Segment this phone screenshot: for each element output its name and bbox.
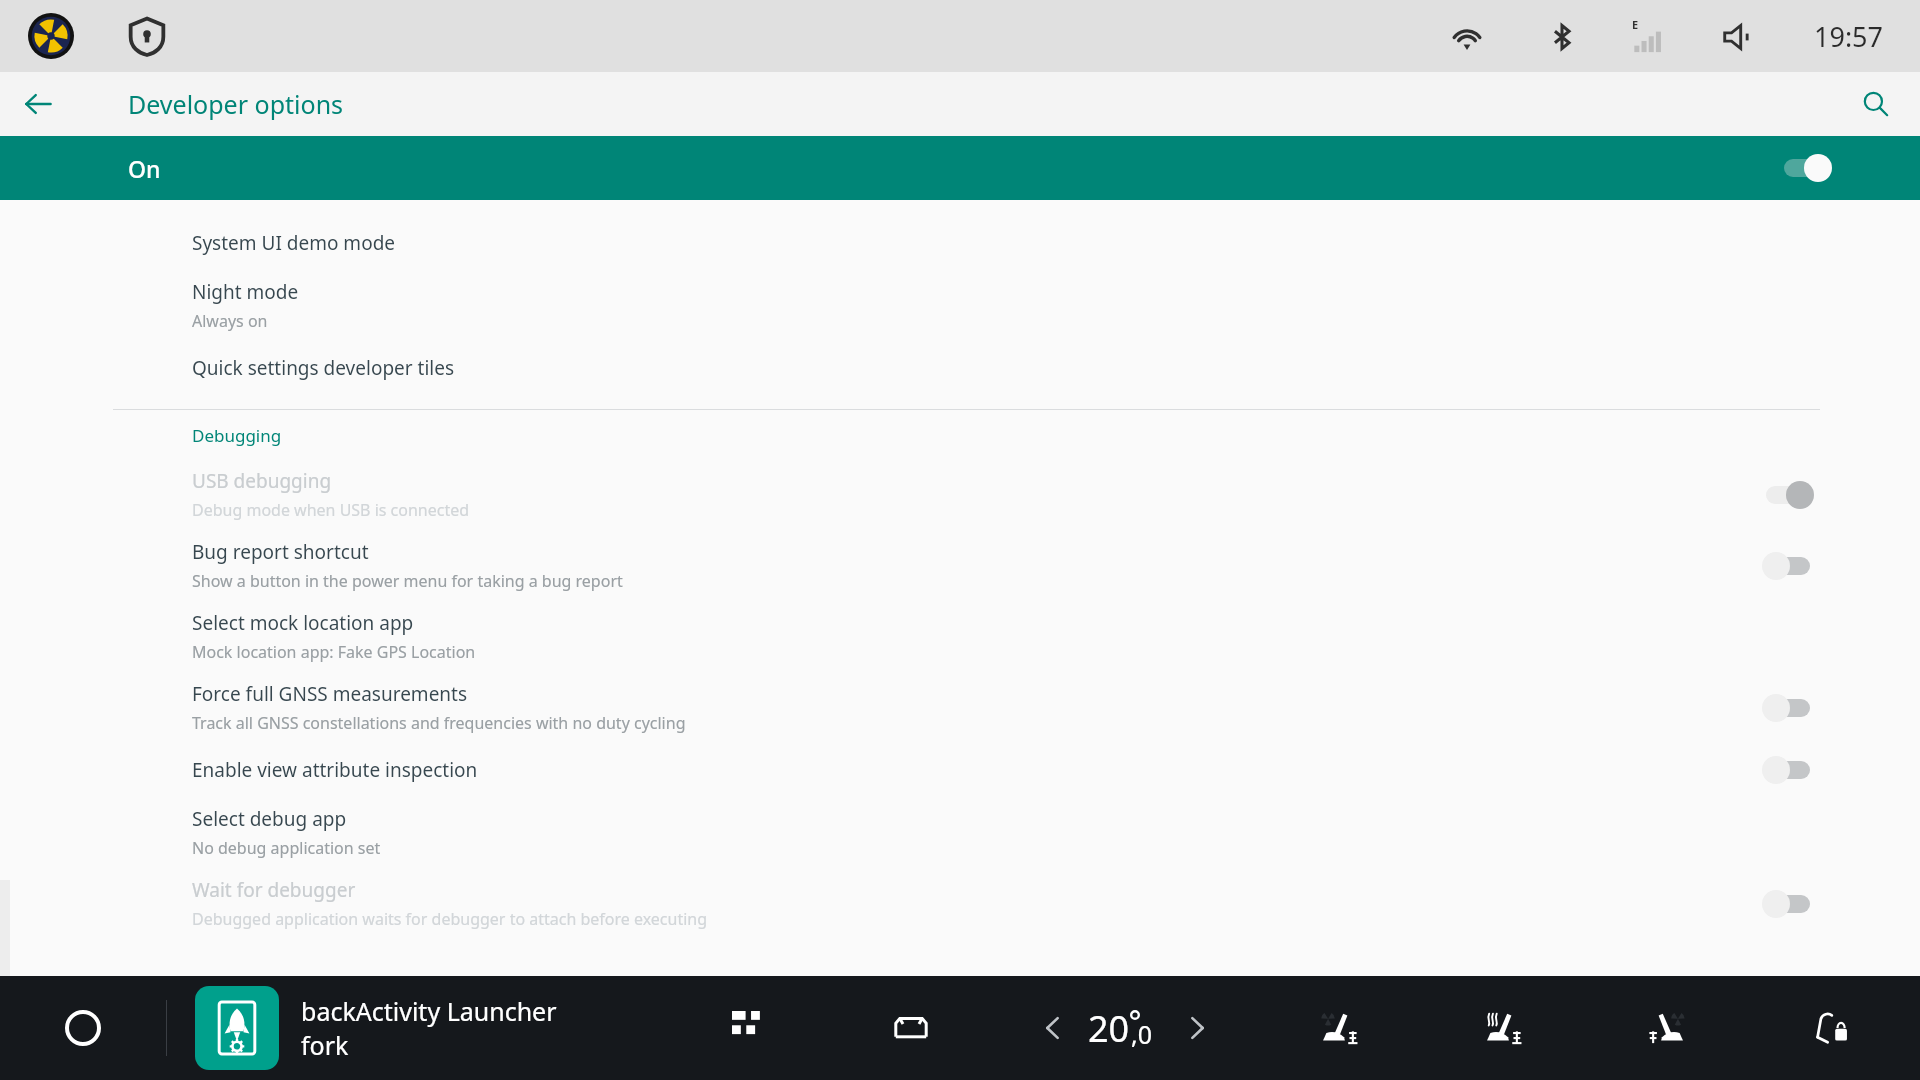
staticText: Enable view attribute inspection: [192, 757, 478, 783]
staticText: Show a button in the power menu for taki…: [192, 570, 623, 592]
button[interactable]: Driver seat cooling: [1296, 985, 1382, 1071]
button[interactable]: Wait for debugger: [0, 868, 1920, 939]
button[interactable]: Enable view attribute inspection: [0, 743, 1920, 797]
button[interactable]: System UI demo mode: [0, 216, 1920, 270]
staticText: On: [128, 153, 161, 184]
staticText: Mock location app: Fake GPS Location: [192, 641, 476, 663]
button[interactable]: Back: [10, 76, 66, 132]
staticText: backActivity Launcher: [301, 994, 557, 1028]
staticText: Track all GNSS constellations and freque…: [192, 712, 686, 734]
button[interactable]: Search: [1848, 76, 1904, 132]
button[interactable]: Home: [0, 976, 166, 1080]
staticText: System UI demo mode: [192, 230, 396, 256]
button[interactable]: Increase temperature: [1162, 993, 1232, 1063]
button[interactable]: Select debug app: [0, 797, 1920, 868]
button[interactable]: Force full GNSS measurements: [0, 672, 1920, 743]
staticText: Debug mode when USB is connected: [192, 499, 470, 521]
button[interactable]: Apps: [706, 985, 792, 1071]
staticText: Wait for debugger: [192, 877, 356, 903]
button[interactable]: Child lock: [1788, 985, 1874, 1071]
button[interactable]: USB debugging: [0, 459, 1920, 530]
button[interactable]: Driver seat heating: [1460, 985, 1546, 1071]
button[interactable]: Passenger seat cooling: [1624, 985, 1710, 1071]
staticText: Force full GNSS measurements: [192, 681, 468, 707]
staticText: Debugging: [192, 424, 282, 447]
staticText: Developer options: [128, 87, 344, 121]
staticText: Always on: [192, 310, 268, 332]
staticText: fork: [301, 1028, 349, 1062]
staticText: Select debug app: [192, 806, 347, 832]
staticText: No debug application set: [192, 837, 381, 859]
staticText: 20: [1088, 1004, 1130, 1053]
staticText: Night mode: [192, 279, 299, 305]
staticText: Debugged application waits for debugger …: [192, 908, 708, 930]
button[interactable]: backActivity Launcher: [195, 976, 557, 1080]
staticText: E: [1632, 17, 1639, 32]
button[interactable]: Quick settings developer tiles: [0, 341, 1920, 395]
staticText: USB debugging: [192, 468, 332, 494]
button[interactable]: Select mock location app: [0, 601, 1920, 672]
button[interactable]: Car: [868, 985, 954, 1071]
button[interactable]: Decrease temperature: [1018, 993, 1088, 1063]
button[interactable]: 20: [1088, 1004, 1162, 1053]
staticText: 19:57: [1814, 18, 1884, 55]
button[interactable]: Bug report shortcut: [0, 530, 1920, 601]
staticText: Bug report shortcut: [192, 539, 369, 565]
button[interactable]: Night mode: [0, 270, 1920, 341]
staticText: ,0: [1131, 1017, 1153, 1051]
staticText: Select mock location app: [192, 610, 414, 636]
staticText: Quick settings developer tiles: [192, 355, 455, 381]
button[interactable]: On: [0, 136, 1920, 200]
